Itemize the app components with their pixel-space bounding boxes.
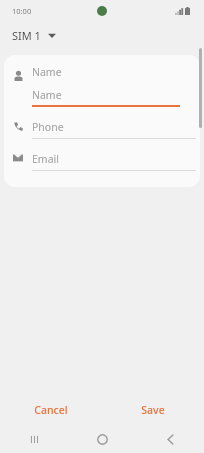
button[interactable]: SIM 1 [10,22,58,49]
button[interactable]: Name [4,65,200,107]
staticText: Save [141,403,165,417]
staticText: Cancel [34,403,68,417]
button[interactable]: Back [136,425,204,453]
staticText: SIM 1 [12,28,41,43]
button[interactable]: Recent apps [0,425,68,453]
button[interactable]: Cancel [24,399,78,421]
staticText: Email [32,152,59,166]
staticText: Name [32,88,62,102]
button[interactable]: Home [68,425,136,453]
button[interactable]: Phone [4,120,200,139]
staticText: Name [32,65,62,79]
staticText: 10:00 [12,6,32,16]
staticText: Phone [32,120,64,134]
button[interactable]: Email [4,152,200,171]
button[interactable]: Save [131,399,175,421]
